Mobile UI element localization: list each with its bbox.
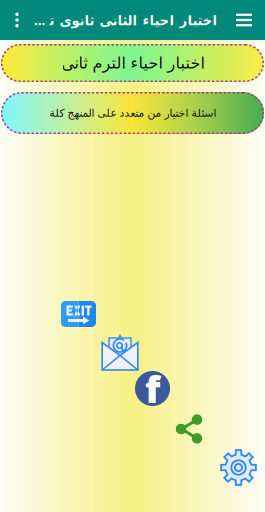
staticText: اختبار احياء الثانى ثانوى ترم ... [34, 11, 217, 29]
staticText: اسئلة اختيار من متعدد على المنهج كلة [49, 107, 216, 119]
button[interactable]: Settings [220, 449, 257, 486]
button[interactable]: Share [175, 414, 203, 444]
button[interactable]: Exit [61, 301, 96, 327]
staticText: f [145, 364, 160, 413]
button[interactable]: More options [0, 0, 34, 40]
button[interactable]: Facebook [135, 371, 170, 406]
button[interactable]: اختبار احياء الترم ثانى [1, 44, 264, 82]
button[interactable]: Email [101, 334, 139, 371]
staticText: اختبار احياء الترم ثانى [61, 54, 204, 72]
button[interactable]: Navigation menu [229, 0, 259, 40]
button[interactable]: اسئلة اختيار من متعدد على المنهج كلة [1, 92, 264, 134]
